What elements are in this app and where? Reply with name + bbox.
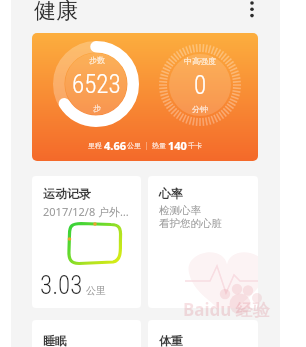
staticText: 公里: [86, 284, 106, 297]
staticText: 6523: [72, 70, 121, 99]
staticText: 体重: [159, 333, 183, 347]
button[interactable]: 步数: [32, 33, 258, 161]
staticText: 心率: [159, 186, 183, 201]
staticText: 4.66: [104, 138, 126, 153]
button[interactable]: 运动记录: [32, 176, 141, 308]
staticText: 步数: [89, 55, 105, 65]
staticText: 分钟: [192, 104, 208, 114]
staticText: 3.03: [40, 271, 83, 300]
staticText: 看护您的心脏: [159, 217, 222, 230]
staticText: 健康: [34, 0, 78, 25]
staticText: 中高强度: [184, 56, 216, 66]
staticText: 千卡: [188, 141, 202, 150]
button[interactable]: 睡眠: [32, 320, 141, 347]
staticText: 热量: [152, 141, 166, 150]
button[interactable]: 心率: [148, 176, 258, 308]
staticText: Baidu 经验: [183, 298, 270, 321]
staticText: 2017/12/8 户外…: [43, 204, 129, 219]
staticText: 公里: [127, 141, 141, 150]
staticText: 里程: [88, 141, 102, 150]
staticText: 140: [168, 138, 187, 153]
staticText: 步: [93, 103, 101, 113]
button[interactable]: 体重: [148, 320, 258, 347]
staticText: 0: [194, 71, 207, 100]
button[interactable]: More options: [237, 0, 267, 24]
staticText: 检测心率: [159, 204, 201, 217]
staticText: 睡眠: [43, 333, 67, 347]
staticText: 运动记录: [43, 186, 91, 201]
